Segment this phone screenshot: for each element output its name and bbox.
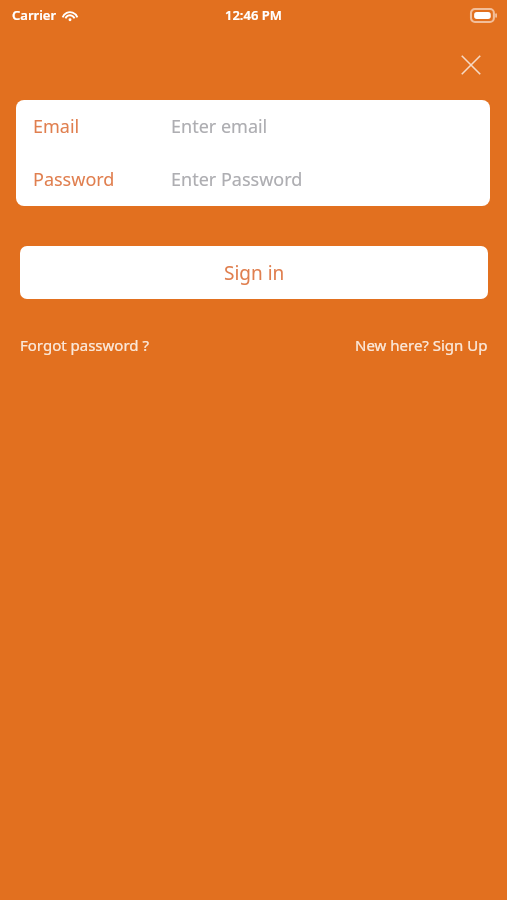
- staticText: Forgot password ?: [20, 335, 149, 355]
- staticText: Email: [33, 114, 80, 139]
- staticText: Sign in: [224, 260, 285, 286]
- staticText: Enter email: [171, 114, 268, 139]
- staticText: New here? Sign Up: [355, 335, 488, 355]
- button[interactable]: Forgot password ?: [20, 332, 149, 358]
- button[interactable]: Close: [449, 43, 493, 87]
- button[interactable]: Email: [16, 100, 490, 153]
- staticText: Enter Password: [171, 167, 303, 192]
- staticText: Password: [33, 167, 115, 192]
- staticText: 12:46 PM: [225, 6, 282, 24]
- button[interactable]: Sign in: [20, 246, 488, 299]
- staticText: Carrier: [12, 6, 57, 24]
- button[interactable]: Password: [16, 153, 490, 206]
- button[interactable]: New here? Sign Up: [355, 332, 488, 358]
